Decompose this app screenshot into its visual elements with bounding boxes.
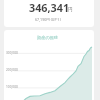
- staticText: 円: [68, 7, 73, 13]
- button[interactable]: 346,341: [4, 0, 94, 27]
- button[interactable]: 資産の推移: [4, 30, 94, 100]
- staticText: 300,000: [6, 51, 18, 55]
- staticText: 200,000: [6, 68, 18, 72]
- staticText: 346,341: [29, 0, 70, 15]
- staticText: 資産の推移: [37, 35, 59, 40]
- staticText: 100,000: [6, 85, 18, 89]
- staticText: 67,190円 (UP↑): [35, 17, 61, 22]
